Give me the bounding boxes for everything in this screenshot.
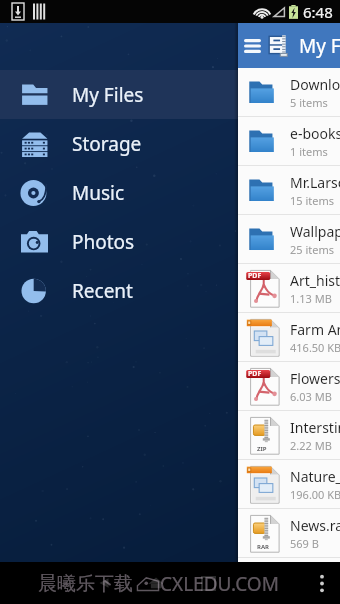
staticText: Farm Animals.ppt (290, 320, 340, 339)
button[interactable]: Storage (0, 119, 238, 168)
staticText: Mr.Larson (290, 173, 340, 192)
button[interactable]: Recent apps (182, 562, 234, 604)
staticText: 15 items (290, 193, 335, 208)
staticText: My Files (72, 82, 144, 108)
staticText: PDF (248, 369, 262, 379)
staticText: Music (72, 180, 125, 206)
button[interactable]: Mr.Larson (0, 166, 340, 214)
button[interactable]: Home (130, 562, 182, 604)
button[interactable]: Recent (0, 266, 238, 315)
staticText: 6:48 (303, 2, 333, 22)
staticText: Flowers.pdf (290, 369, 340, 388)
button[interactable]: Back (78, 562, 130, 604)
staticText: Photos (72, 229, 135, 255)
button[interactable]: ZIP (0, 411, 340, 459)
button[interactable]: Download (0, 68, 340, 116)
staticText: 6.03 MB (290, 389, 332, 404)
staticText: Wallpapers (290, 222, 340, 241)
staticText: 晨曦乐下载 (38, 572, 133, 596)
staticText: 2.22 MB (290, 438, 332, 453)
staticText: 1 items (290, 144, 328, 159)
button[interactable]: RAR (0, 509, 340, 557)
button[interactable]: Farm Animals.ppt (0, 313, 340, 361)
staticText: 569 B (290, 536, 319, 551)
button[interactable]: Music (0, 168, 238, 217)
staticText: 196.00 KB (290, 487, 340, 502)
button[interactable]: My Files (0, 70, 238, 119)
staticText: Art_history.pdf (290, 271, 340, 290)
staticText: RAR (257, 543, 270, 551)
button[interactable]: PDF (0, 362, 340, 410)
staticText: Nature_lesson.ppt (290, 467, 340, 486)
button[interactable]: Photos (0, 217, 238, 266)
staticText: News.rar (290, 516, 340, 535)
staticText: 25 items (290, 242, 335, 257)
staticText: PDF (248, 271, 262, 281)
button[interactable]: PDF (0, 264, 340, 312)
staticText: e-books (290, 124, 340, 143)
staticText: 5 items (290, 95, 328, 110)
button[interactable]: More options (304, 562, 340, 604)
staticText: My Files (299, 33, 340, 59)
button[interactable]: e-books (0, 117, 340, 165)
button[interactable]: Nature_lesson.ppt (0, 460, 340, 508)
staticText: Download (290, 75, 340, 94)
staticText: ZIP (257, 445, 267, 453)
button[interactable]: Wallpapers (0, 215, 340, 263)
staticText: CXLEDU.COM (160, 571, 279, 597)
staticText: Recent (72, 278, 133, 304)
staticText: 1.13 MB (290, 291, 332, 306)
staticText: Interstingtrip.zip (290, 418, 340, 437)
staticText: 416.50 KB (290, 340, 340, 355)
button[interactable]: Open navigation drawer (238, 23, 266, 68)
staticText: Storage (72, 131, 142, 157)
